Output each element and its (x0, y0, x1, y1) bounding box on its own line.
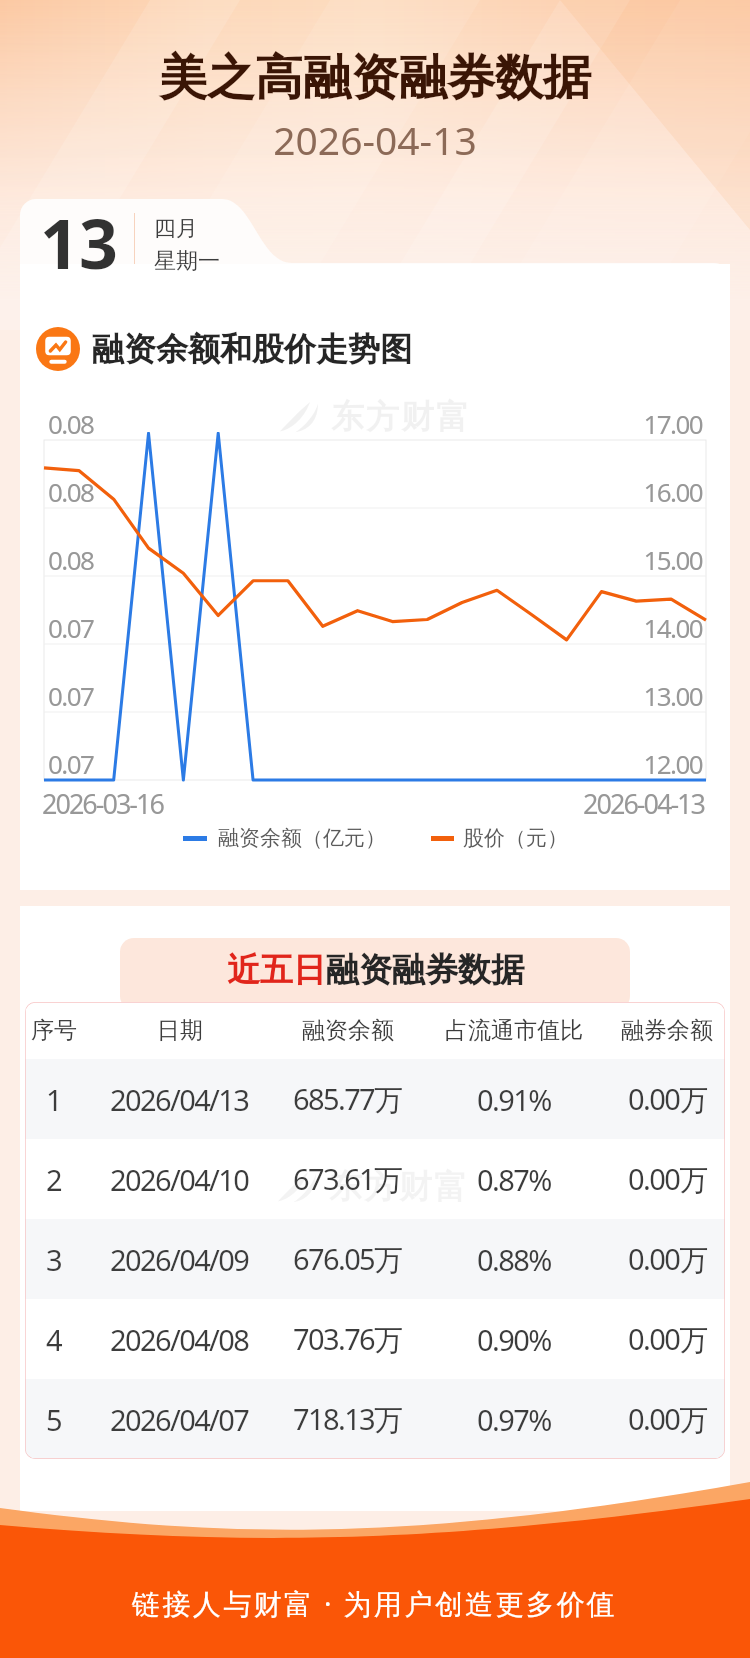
staticText: 0.88% (477, 1240, 551, 1279)
staticText: 0.00万 (628, 1319, 707, 1359)
staticText: 0.08 (48, 542, 94, 577)
staticText: 0.07 (48, 746, 94, 781)
staticText: 0.91% (477, 1080, 551, 1119)
staticText: 0.08 (48, 406, 94, 441)
staticText: 占流通市值比 (445, 1016, 583, 1045)
staticText: 东方财富 (330, 396, 470, 438)
staticText: 东方财富 (328, 1166, 468, 1208)
staticText: 14.00 (44, 610, 702, 645)
staticText: 融资余额 (302, 1016, 394, 1045)
staticText: 13 (40, 196, 118, 289)
staticText: 2026/04/13 (110, 1080, 249, 1119)
button[interactable]: 3 (25, 1219, 725, 1299)
staticText: 0.90% (477, 1320, 551, 1359)
staticText: 3 (46, 1240, 61, 1279)
staticText: 2026/04/10 (110, 1160, 249, 1199)
staticText: 4 (46, 1320, 61, 1359)
staticText: 融资余额（亿元） (218, 825, 386, 851)
staticText: 15.00 (44, 542, 702, 577)
staticText: 0.87% (477, 1160, 551, 1199)
staticText: 0.08 (48, 474, 94, 509)
staticText: 0.00万 (628, 1079, 707, 1119)
staticText: 13.00 (44, 678, 702, 713)
staticText: 融资融券数据 (326, 949, 524, 991)
staticText: 融券余额 (621, 1016, 713, 1045)
staticText: 近五日 (227, 949, 326, 991)
staticText: 685.77万 (293, 1079, 402, 1119)
staticText: 美之高融资融券数据 (0, 48, 750, 108)
staticText: 718.13万 (293, 1399, 402, 1439)
staticText: 0.07 (48, 610, 94, 645)
button[interactable]: 2 (25, 1139, 725, 1219)
staticText: 2026/04/09 (110, 1240, 249, 1279)
staticText: 0.97% (477, 1400, 551, 1439)
staticText: 2026-04-13 (0, 113, 750, 166)
other: 走势图 (36, 327, 80, 371)
button[interactable]: 4 (25, 1299, 725, 1379)
staticText: 0.00万 (628, 1399, 707, 1439)
staticText: 股价（元） (463, 825, 568, 851)
staticText: 四月 (154, 215, 198, 243)
staticText: 融资余额和股价走势图 (92, 329, 412, 369)
staticText: 0.00万 (628, 1239, 707, 1279)
staticText: 17.00 (44, 406, 702, 441)
button[interactable]: 1 (25, 1059, 725, 1139)
staticText: 0.00万 (628, 1159, 707, 1199)
staticText: 12.00 (44, 746, 702, 781)
staticText: 2026/04/08 (110, 1320, 249, 1359)
staticText: 703.76万 (293, 1319, 402, 1359)
staticText: 16.00 (44, 474, 702, 509)
button[interactable]: 5 (25, 1379, 725, 1459)
staticText: 673.61万 (293, 1159, 402, 1199)
staticText: 2 (46, 1160, 61, 1199)
staticText: 0.07 (48, 678, 94, 713)
staticText: 676.05万 (293, 1239, 402, 1279)
staticText: 1 (46, 1080, 61, 1119)
staticText: 序号 (31, 1016, 77, 1045)
staticText: 2026/04/07 (110, 1400, 249, 1439)
staticText: 2026-03-16 (42, 785, 163, 822)
staticText: 星期一 (154, 247, 220, 275)
staticText: 日期 (157, 1016, 203, 1045)
staticText: 链接人与财富 · 为用户创造更多价值 (132, 1584, 618, 1622)
staticText: 5 (46, 1400, 61, 1439)
staticText: 2026-04-13 (20, 785, 704, 822)
